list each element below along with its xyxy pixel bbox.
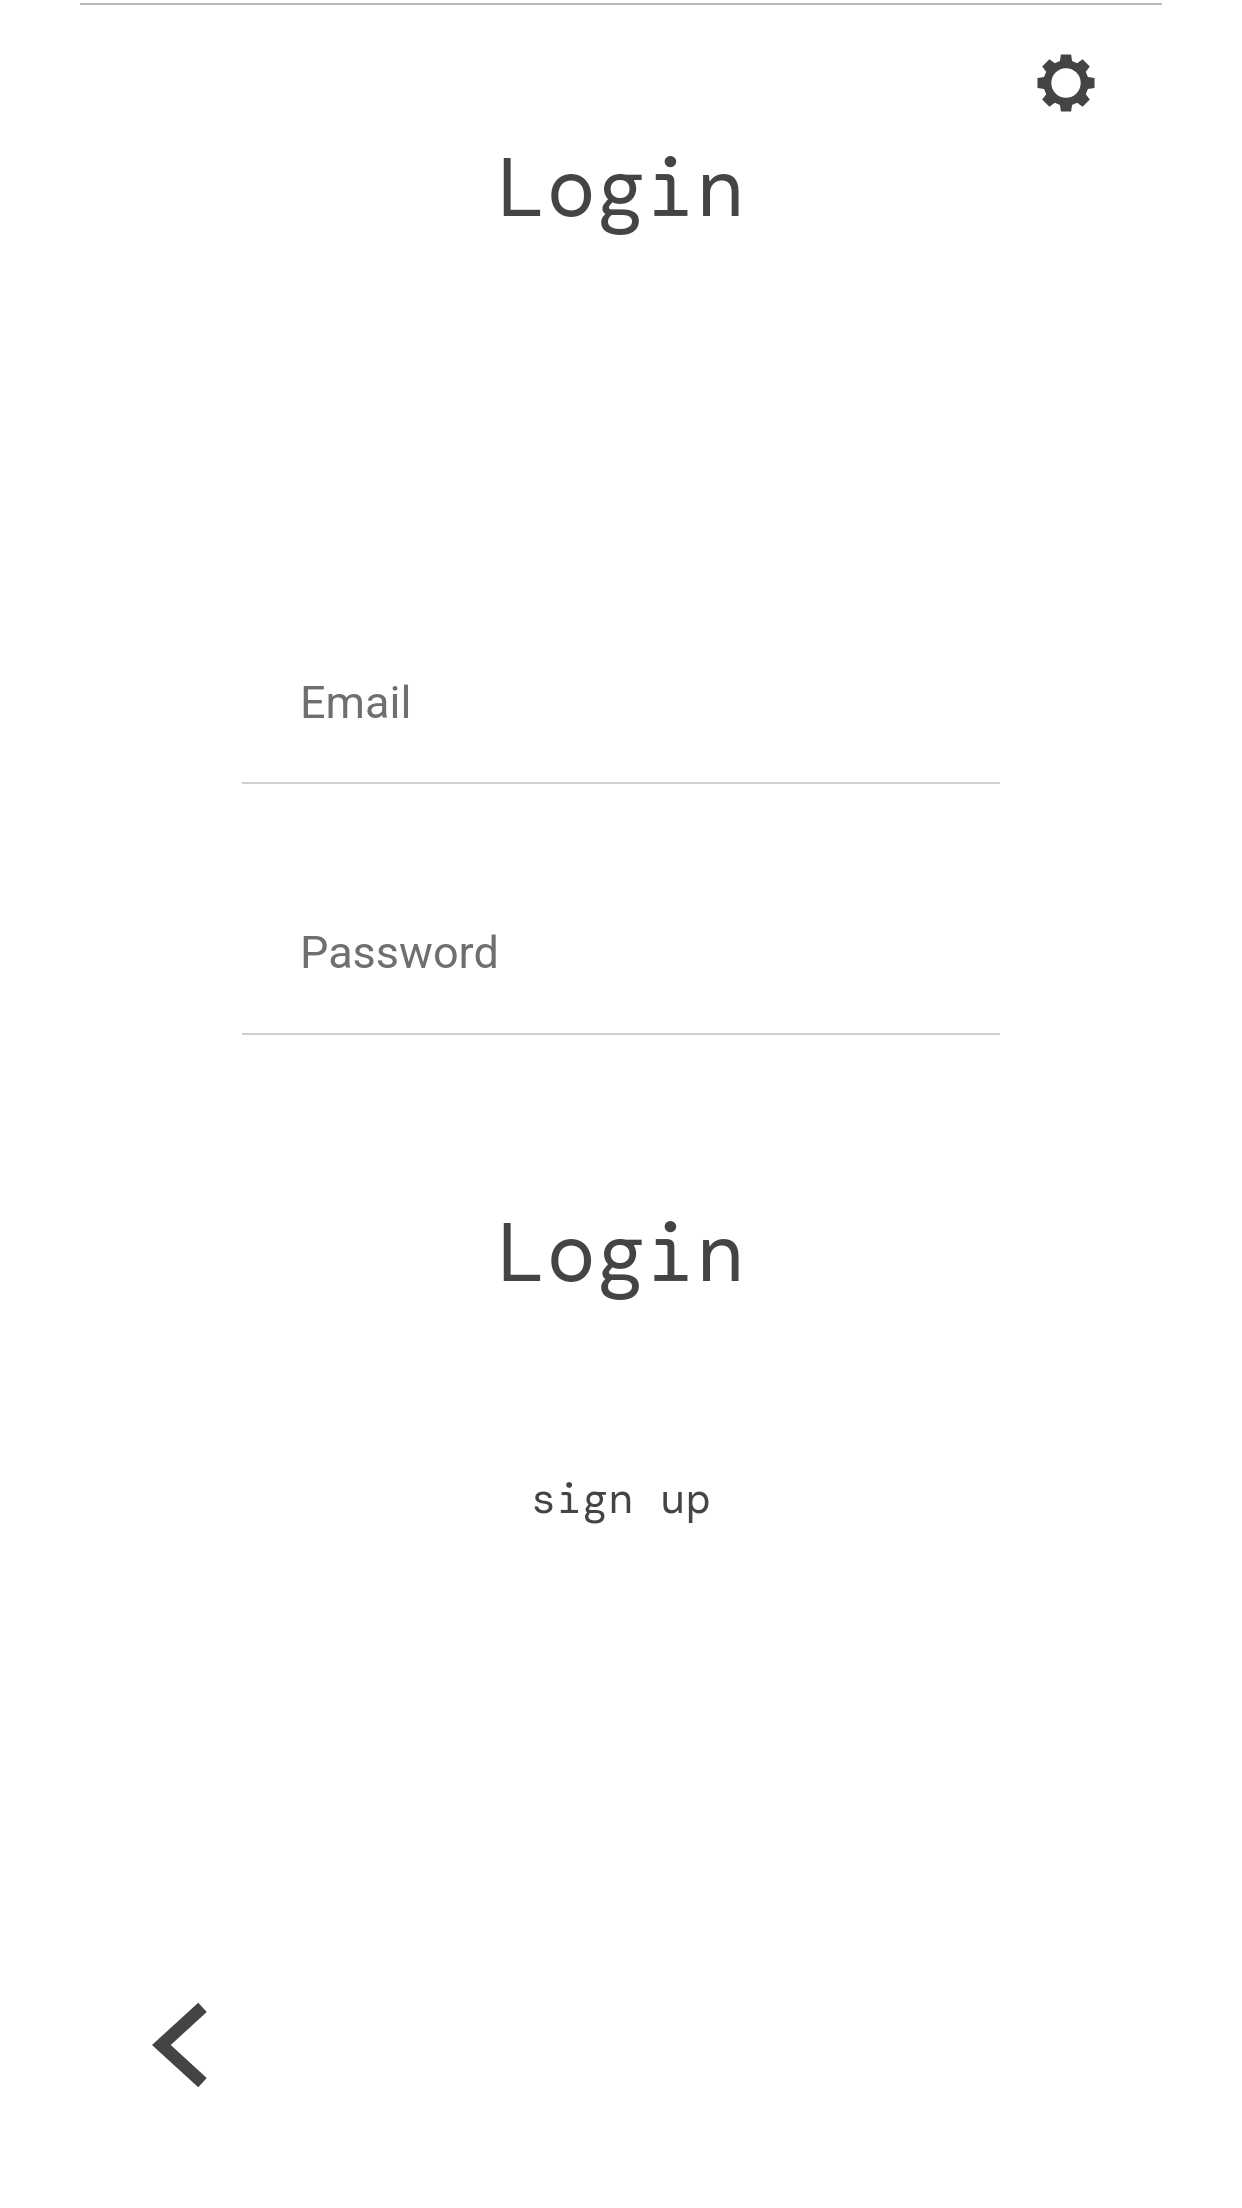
button[interactable]: Back [132,1996,230,2094]
staticText: Login [0,134,1242,242]
staticText: Email [300,676,412,729]
button[interactable]: Login [0,1199,1242,1307]
button[interactable]: Password [242,892,1000,1035]
button[interactable]: sign up [0,1470,1242,1526]
button[interactable]: Settings [1000,17,1132,149]
button[interactable]: Email [242,642,1000,784]
staticText: Password [300,926,499,979]
